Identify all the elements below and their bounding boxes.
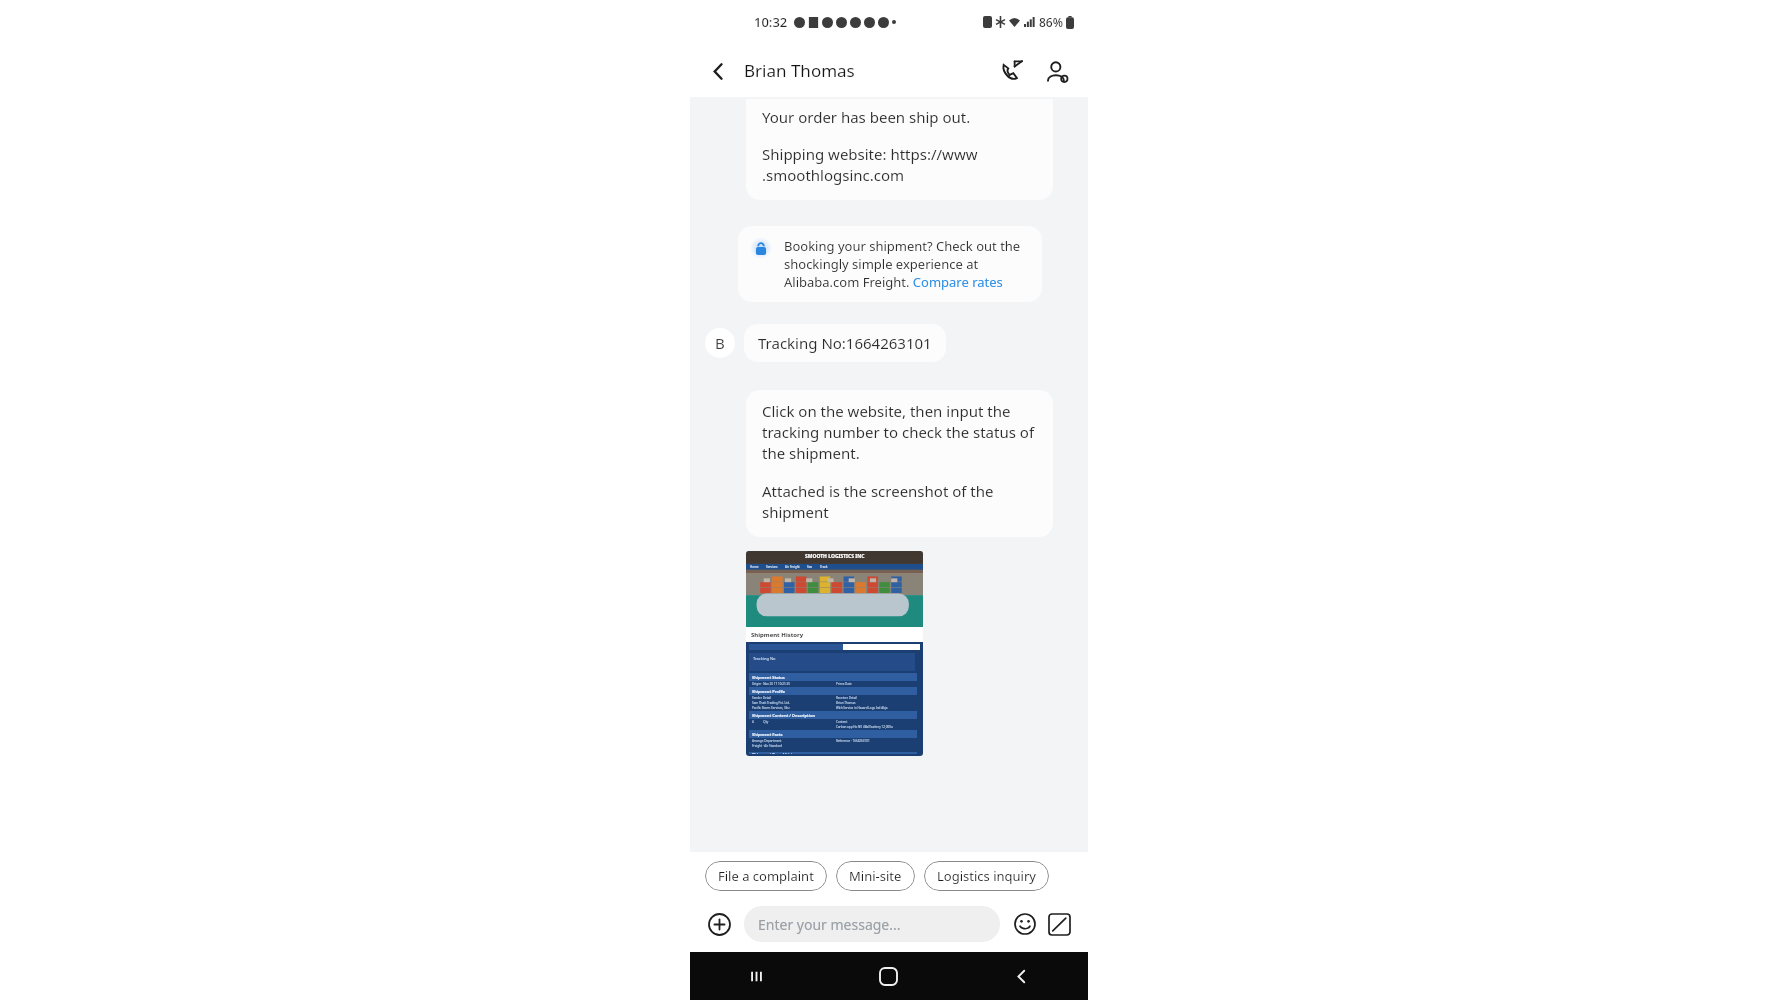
staticText: Attached is the screenshot of the shipme…: [762, 481, 1039, 523]
button[interactable]: Enter your message...: [744, 906, 1000, 942]
button[interactable]: Tracking No:1664263101: [744, 324, 946, 362]
staticText: Click on the website, then input the tra…: [762, 401, 1039, 464]
staticText: B: [715, 333, 725, 353]
button[interactable]: File a complaint: [705, 861, 827, 891]
staticText: Logistics inquiry: [937, 867, 1036, 885]
button[interactable]: Booking your shipment? Check out the sho…: [738, 226, 1042, 302]
staticText: Shipment History: [751, 631, 804, 639]
staticText: Content Carbon app Ho NV 4Ball battery 1…: [836, 720, 893, 729]
staticText: Shipment Status: [752, 675, 785, 680]
staticText: SMOOTH LOGISTICS INC: [805, 553, 865, 560]
button[interactable]: Click on the website, then input the tra…: [746, 390, 1053, 537]
staticText: Arrange Department Freight · Air Standar…: [752, 739, 782, 748]
staticText: 86%: [1039, 14, 1063, 30]
staticText: Services: [766, 565, 778, 569]
staticText: Sender Detail Sam Thatt Trading Pvt. Ltd…: [752, 696, 790, 710]
staticText: Shipment Facts: [752, 732, 783, 737]
staticText: Enter your message...: [758, 915, 901, 934]
staticText: Receiver Detail Brian Thomas With Servic…: [836, 696, 888, 710]
button[interactable]: Your order has been ship out.: [746, 99, 1053, 200]
button[interactable]: Gallery: [1042, 907, 1076, 941]
button[interactable]: Emoji: [1008, 907, 1042, 941]
staticText: Shipment Travel history: [752, 752, 800, 754]
button[interactable]: Recents: [690, 952, 822, 1000]
button[interactable]: Call: [990, 49, 1034, 93]
staticText: 10:32: [754, 13, 788, 31]
button[interactable]: Back: [698, 51, 738, 91]
staticText: Your order has been ship out.: [762, 107, 971, 127]
staticText: Shipment Content / Description: [752, 713, 815, 718]
staticText: Origin · Nov 20 17 10:21:35: [752, 682, 790, 686]
staticText: Tracking No:1664263101: [758, 333, 932, 353]
button[interactable]: Add attachment: [702, 907, 736, 941]
button[interactable]: Home: [822, 952, 955, 1000]
staticText: Home: [750, 565, 759, 569]
button[interactable]: Contact info: [1034, 49, 1078, 93]
staticText: Shipping website: https://www .smoothlog…: [762, 144, 978, 186]
staticText: Air Freight: [785, 565, 800, 569]
staticText: Booking your shipment? Check out the sho…: [784, 237, 1030, 291]
staticText: Tracking No: [753, 656, 776, 661]
staticText: Brian Thomas: [744, 59, 855, 82]
button[interactable]: Logistics inquiry: [924, 861, 1049, 891]
button[interactable]: Back: [955, 952, 1088, 1000]
staticText: File a complaint: [718, 867, 814, 885]
staticText: Prime Date: [836, 682, 852, 686]
staticText: Reference · 1664263101: [836, 739, 870, 743]
button[interactable]: Mini-site: [836, 861, 915, 891]
button[interactable]: Shipment screenshot: [746, 551, 923, 756]
staticText: Shipment Profile: [752, 689, 786, 694]
staticText: Sea: [807, 565, 813, 569]
staticText: Track: [820, 565, 828, 569]
staticText: Mini-site: [849, 867, 902, 885]
staticText: # Qty: [752, 720, 769, 724]
